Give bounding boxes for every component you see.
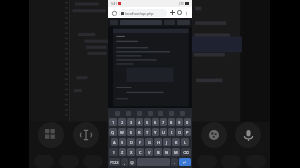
staticText: H [157,140,160,145]
button[interactable]: W [118,128,126,136]
staticText: 3 [130,120,133,125]
button[interactable]: K [172,138,180,146]
staticText: LTE [179,2,184,6]
staticText: K [175,140,178,145]
button[interactable]: H [154,138,162,146]
button[interactable]: ↵ [179,158,191,166]
button[interactable]: S [119,138,126,146]
button[interactable]: Apps [38,122,64,148]
staticText: M [174,150,178,155]
staticText: 1 [112,120,115,125]
button[interactable]: Home [111,10,117,16]
staticText: 7 [162,120,165,125]
button[interactable]: N [163,148,171,156]
staticText: F [139,140,142,145]
button[interactable]: New tab [169,9,176,16]
staticText: N [165,150,169,155]
staticText: T [146,130,149,135]
staticText: ☺ [130,160,135,165]
button[interactable]: C [136,148,144,156]
staticText: B [157,150,160,155]
staticText: A [113,140,116,145]
button[interactable]: 1 [109,118,117,126]
staticText: 5 [146,120,149,125]
button[interactable]: X [127,148,135,156]
staticText: 4 [138,120,141,125]
button[interactable]: ☺ [129,158,136,166]
staticText: P [186,130,189,135]
button[interactable]: . [171,158,178,166]
staticText: 0 [186,120,189,125]
button[interactable]: 8 [168,118,175,126]
button[interactable]: localhost/api.php [121,9,165,17]
button[interactable]: R [136,128,143,136]
staticText: Y [154,130,157,135]
button[interactable]: Palette [201,122,227,148]
button[interactable]: J [163,138,171,146]
button[interactable]: T [144,128,151,136]
staticText: R [138,130,141,135]
staticText: 6 [154,120,157,125]
button[interactable]: 7 [160,118,167,126]
staticText: 9 [178,120,181,125]
staticText: O [178,130,182,135]
button[interactable]: U [160,128,167,136]
staticText: Z [121,150,124,155]
button[interactable]: 0 [184,118,191,126]
staticText: J [166,140,168,145]
button[interactable]: D [127,138,135,146]
staticText: ⌫ [183,150,189,155]
staticText: X [130,150,133,155]
button[interactable]: 5 [144,118,151,126]
button[interactable]: Microphone [235,122,261,148]
button[interactable]: A [111,138,118,146]
button[interactable]: , [121,158,128,166]
button[interactable]: M [172,148,180,156]
staticText: W [120,130,124,135]
button[interactable]: More options [183,10,189,16]
staticText: V [148,150,151,155]
staticText: S [121,140,124,145]
button[interactable]: Z [119,148,126,156]
staticText: C [139,150,142,155]
button[interactable]: O [176,128,183,136]
button[interactable]: G [145,138,153,146]
button[interactable]: P [184,128,191,136]
staticText: ↵ [183,160,187,165]
staticText: ⇧ [112,150,116,155]
button[interactable]: 3 [127,118,135,126]
button[interactable]: E [127,128,135,136]
staticText: 9:41 [111,2,117,6]
button[interactable]: 4 [136,118,143,126]
button[interactable]: ⌫ [181,148,191,156]
button[interactable]: ?123 [109,158,120,166]
button[interactable]: Account [176,9,183,16]
button[interactable]: Y [152,128,159,136]
button[interactable]: B [154,148,162,156]
button[interactable]: 6 [152,118,159,126]
staticText: L [184,140,187,145]
button[interactable]: 2 [118,118,126,126]
staticText: G [148,140,151,145]
staticText: localhost/api.php [125,11,154,16]
button[interactable]: V [145,148,153,156]
staticText: Q [111,130,115,135]
button[interactable]: F [136,138,144,146]
button[interactable]: Q [109,128,117,136]
staticText: D [130,140,133,145]
staticText: 2 [121,120,124,125]
button[interactable]: L [181,138,189,146]
button[interactable]: Text cursor [73,122,99,148]
button[interactable]: ⇧ [109,148,118,156]
staticText: E [130,130,133,135]
button[interactable]: I [168,128,175,136]
button[interactable]: 9 [176,118,183,126]
